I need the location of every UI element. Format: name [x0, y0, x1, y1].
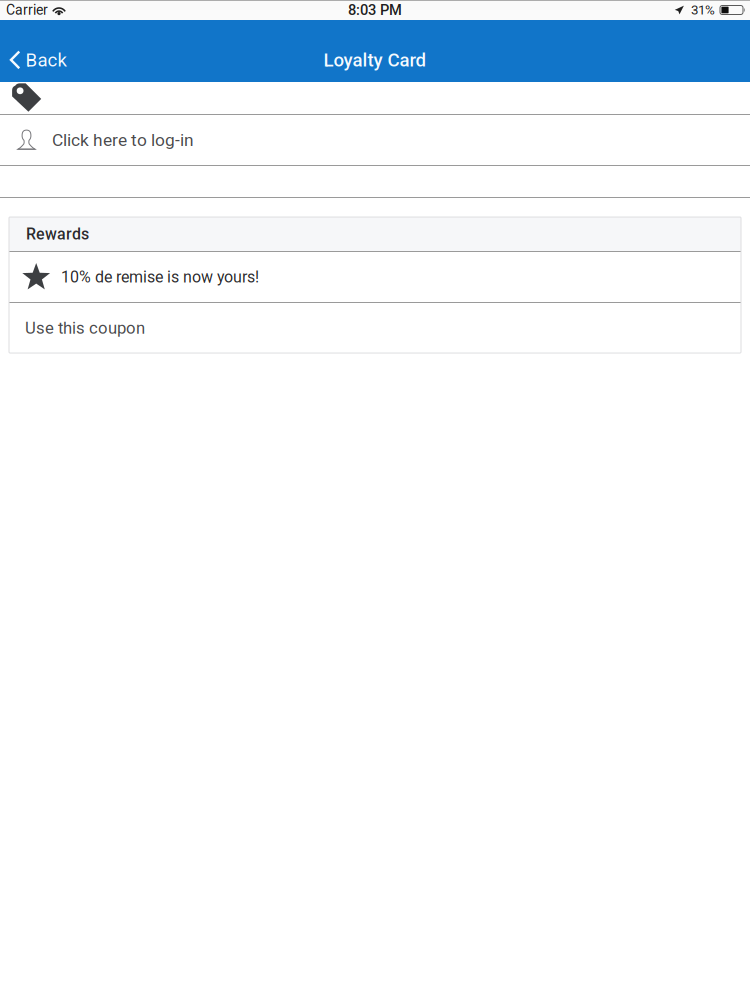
staticText: Loyalty Card	[323, 49, 426, 71]
staticText: Carrier	[6, 2, 48, 18]
button[interactable]: Click here to log-in	[0, 115, 750, 165]
button[interactable]: 10% de remise is now yours!	[9, 252, 741, 302]
staticText: Back	[25, 49, 66, 71]
staticText: Rewards	[26, 225, 89, 243]
button[interactable]: Loyalty tag	[0, 82, 750, 114]
staticText: 31%	[691, 2, 715, 18]
staticText: 10% de remise is now yours!	[61, 268, 259, 286]
button[interactable]: Back	[0, 38, 80, 82]
staticText: Use this coupon	[25, 318, 145, 338]
button[interactable]: Use this coupon	[9, 303, 741, 353]
staticText: 8:03 PM	[348, 1, 402, 19]
staticText: Click here to log-in	[52, 130, 194, 150]
